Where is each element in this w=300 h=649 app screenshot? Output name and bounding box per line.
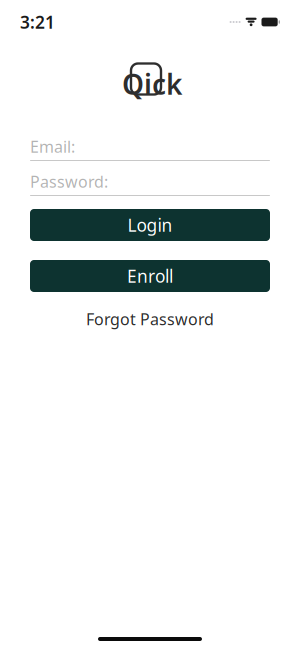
staticText: Forgot Password: [86, 308, 214, 330]
staticText: 3:21: [20, 10, 55, 33]
staticText: Password:: [30, 171, 108, 192]
button[interactable]: Enroll: [30, 260, 270, 292]
staticText: Login: [127, 213, 172, 236]
staticText: Enroll: [127, 264, 173, 287]
staticText: Qick: [122, 65, 182, 103]
button[interactable]: Login: [30, 209, 270, 241]
button[interactable]: Forgot Password: [30, 310, 270, 328]
staticText: Email:: [30, 136, 75, 157]
